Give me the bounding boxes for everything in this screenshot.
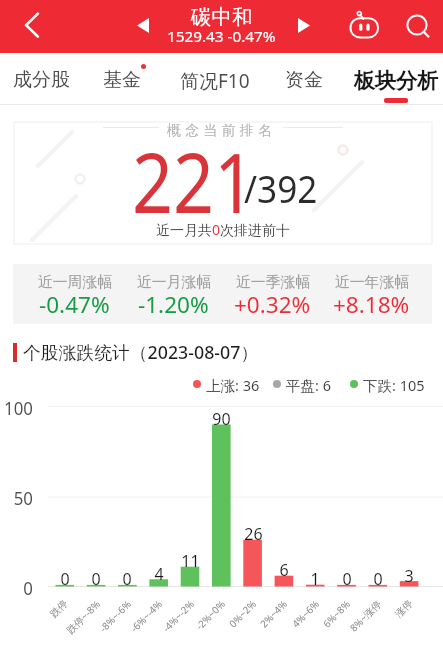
- staticText: 1: [310, 568, 320, 590]
- staticText: 近一月涨幅: [137, 273, 211, 292]
- staticText: 3: [404, 565, 414, 587]
- staticText: 221: [132, 125, 255, 237]
- staticText: 100: [4, 395, 33, 420]
- button[interactable]: 资金: [278, 53, 330, 105]
- button[interactable]: 近一周涨幅: [25, 264, 124, 324]
- staticText: 基金: [103, 68, 141, 92]
- staticText: -1.20%: [138, 289, 209, 320]
- staticText: -2%~0%: [193, 598, 228, 633]
- staticText: 涨停: [393, 598, 415, 620]
- button[interactable]: AI assistant: [343, 5, 385, 47]
- staticText: 0: [342, 568, 352, 590]
- button[interactable]: 近一年涨幅: [322, 264, 421, 324]
- staticText: 90: [212, 408, 231, 430]
- staticText: 6%~8%: [320, 598, 353, 631]
- button[interactable]: 板块分析: [348, 53, 443, 105]
- staticText: -6%~-4%: [127, 598, 165, 635]
- staticText: 0: [23, 575, 33, 600]
- staticText: +0.32%: [234, 289, 311, 320]
- button[interactable]: 上涨: 36: [193, 375, 260, 393]
- staticText: 0: [91, 568, 101, 590]
- staticText: 跌停: [48, 598, 70, 620]
- staticText: 近一季涨幅: [236, 273, 310, 292]
- staticText: 板块分析: [354, 68, 438, 94]
- button[interactable]: 简况F10: [162, 53, 268, 105]
- button[interactable]: Search: [396, 5, 438, 47]
- button[interactable]: 平盘: 6: [273, 375, 331, 393]
- staticText: 资金: [285, 68, 323, 92]
- staticText: 跌停~-8%: [63, 598, 103, 637]
- staticText: 8%~涨停: [347, 598, 384, 635]
- staticText: 4%~6%: [289, 598, 322, 631]
- staticText: -8%~-6%: [96, 598, 134, 635]
- staticText: 26: [244, 523, 263, 545]
- staticText: -0.47%: [39, 289, 110, 320]
- staticText: 简况F10: [180, 68, 250, 94]
- staticText: 0: [60, 568, 70, 590]
- button[interactable]: 基金: [96, 53, 148, 105]
- staticText: 碳中和: [191, 4, 253, 30]
- staticText: 个股涨跌统计（2023-08-07）: [23, 340, 259, 364]
- staticText: 概念当前排名: [167, 122, 277, 140]
- button[interactable]: 下跌: 105: [350, 375, 425, 393]
- staticText: +8.18%: [333, 289, 410, 320]
- staticText: 0: [373, 568, 383, 590]
- staticText: 0: [122, 568, 132, 590]
- staticText: /392: [244, 161, 318, 214]
- staticText: 上涨: 36: [206, 375, 260, 393]
- staticText: 平盘: 6: [286, 375, 331, 393]
- staticText: -4%~-2%: [159, 598, 197, 635]
- staticText: 2%~4%: [257, 598, 290, 631]
- staticText: 11: [181, 550, 200, 572]
- staticText: 0%~2%: [226, 598, 259, 631]
- staticText: 1529.43 -0.47%: [167, 26, 276, 47]
- staticText: 近一年涨幅: [335, 273, 409, 292]
- button[interactable]: 成分股: [6, 53, 76, 105]
- button[interactable]: Previous sector: [128, 8, 158, 42]
- button[interactable]: 近一月涨幅: [124, 264, 223, 324]
- button[interactable]: 近一季涨幅: [223, 264, 322, 324]
- staticText: 6: [279, 559, 289, 581]
- staticText: 近一月共0次排进前十: [156, 220, 291, 239]
- staticText: 4: [154, 563, 164, 585]
- button[interactable]: Next sector: [289, 8, 319, 42]
- button[interactable]: Back: [12, 3, 58, 49]
- staticText: 近一周涨幅: [38, 273, 112, 292]
- staticText: 成分股: [13, 68, 70, 92]
- staticText: 50: [14, 485, 33, 510]
- staticText: 下跌: 105: [363, 375, 425, 393]
- button[interactable]: 概念当前排名: [14, 122, 432, 244]
